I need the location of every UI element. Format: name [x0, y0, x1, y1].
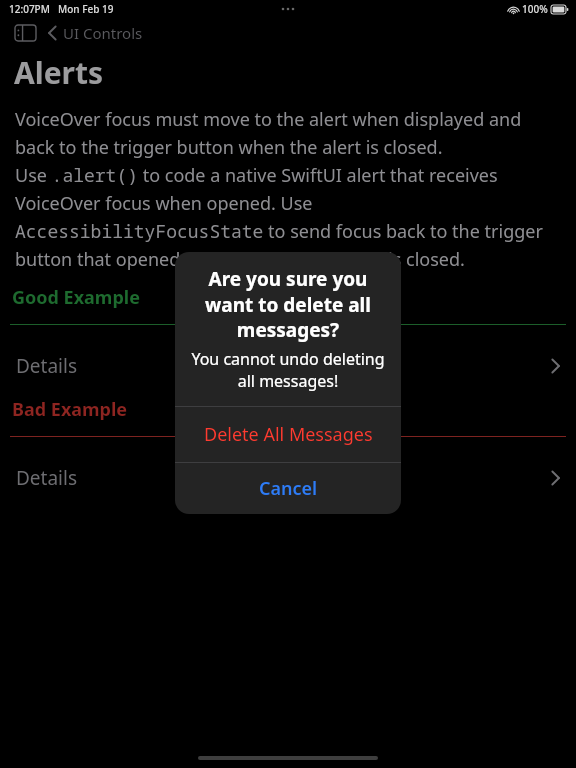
- button[interactable]: Details: [0, 463, 576, 493]
- staticText: Mon Feb 19: [58, 2, 114, 16]
- staticText: Good Example: [12, 285, 140, 310]
- button[interactable]: Delete All Messages: [175, 407, 401, 462]
- button[interactable]: Toggle sidebar: [8, 20, 42, 46]
- button[interactable]: Details: [0, 351, 576, 381]
- staticText: VoiceOver focus must move to the alert w…: [15, 107, 561, 271]
- staticText: Delete All Messages: [204, 422, 373, 447]
- staticText: Cancel: [259, 476, 318, 501]
- staticText: 100%: [522, 2, 548, 16]
- staticText: Details: [16, 353, 78, 379]
- staticText: UI Controls: [63, 23, 143, 43]
- staticText: 12:07PM: [9, 2, 50, 16]
- staticText: Bad Example: [12, 397, 128, 422]
- staticText: Alerts: [14, 52, 104, 93]
- staticText: Are you sure you want to delete all mess…: [191, 266, 385, 342]
- staticText: You cannot undo deleting all messages!: [189, 348, 387, 392]
- button[interactable]: UI Controls: [44, 19, 147, 47]
- button[interactable]: Cancel: [175, 463, 401, 514]
- staticText: Details: [16, 465, 78, 491]
